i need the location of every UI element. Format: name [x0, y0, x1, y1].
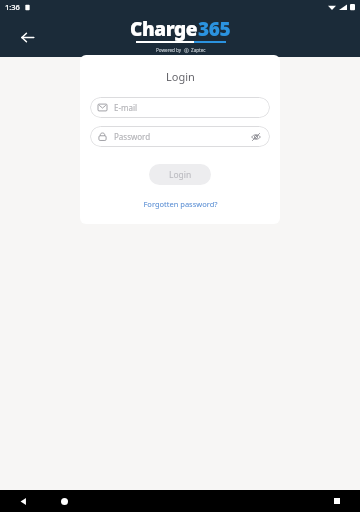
button[interactable]: Password	[90, 126, 270, 147]
button[interactable]: E-mail	[90, 97, 270, 118]
button[interactable]: Forgotten password?	[139, 197, 222, 211]
staticText: Forgotten password?	[143, 199, 218, 209]
staticText: 365	[198, 16, 231, 42]
button[interactable]: Back	[12, 490, 34, 512]
button[interactable]: Back	[14, 24, 40, 50]
staticText: Password	[114, 131, 151, 142]
button[interactable]: Recent apps	[326, 490, 348, 512]
staticText: E-mail	[114, 102, 138, 113]
staticText: Login	[166, 69, 195, 84]
staticText: Powered by	[156, 47, 182, 53]
button[interactable]: Home	[53, 490, 75, 512]
button[interactable]: Login	[149, 164, 211, 185]
button[interactable]: Show password	[249, 130, 262, 143]
staticText: Zaptec	[191, 47, 206, 53]
staticText: 1:36	[5, 2, 20, 12]
staticText: Charge	[130, 16, 198, 42]
button[interactable]: Charge	[130, 16, 231, 53]
staticText: Login	[169, 169, 192, 181]
